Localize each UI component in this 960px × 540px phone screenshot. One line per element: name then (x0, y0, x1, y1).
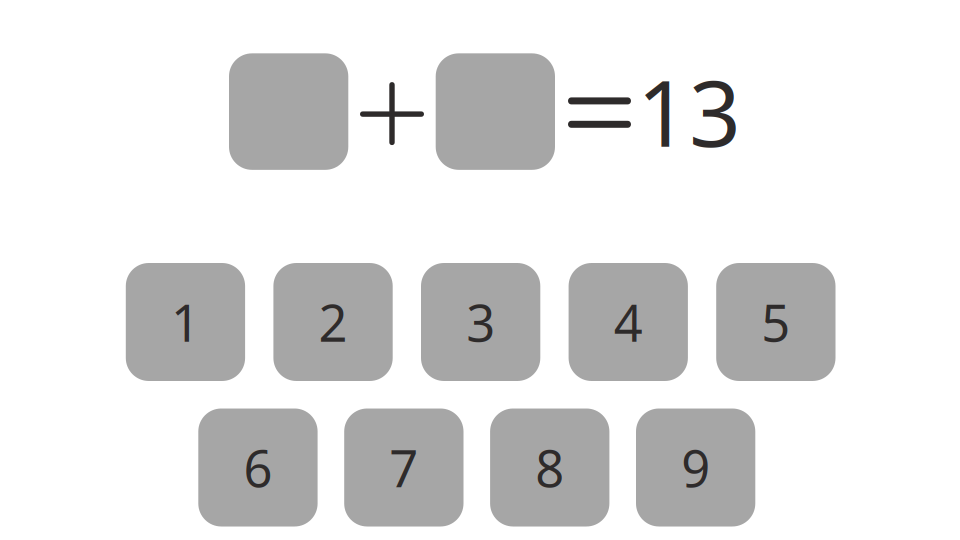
staticText: 6 (243, 434, 272, 501)
staticText: 2 (318, 288, 347, 356)
staticText: 9 (681, 434, 710, 501)
button[interactable]: 7 (344, 408, 463, 526)
button[interactable]: 3 (421, 263, 540, 381)
staticText: 7 (389, 434, 418, 501)
staticText: 13 (637, 51, 741, 172)
button[interactable]: 8 (490, 408, 609, 526)
button[interactable]: 2 (273, 263, 393, 381)
staticText: 4 (614, 288, 643, 356)
button[interactable]: Empty number slot (436, 53, 555, 170)
staticText: 8 (535, 434, 564, 501)
staticText: 5 (761, 288, 790, 356)
button[interactable]: 4 (569, 263, 688, 381)
button[interactable]: Empty number slot (229, 53, 348, 170)
button[interactable]: 5 (716, 263, 835, 381)
staticText: 3 (466, 288, 495, 356)
button[interactable]: 9 (636, 408, 755, 526)
button[interactable]: 1 (126, 263, 245, 381)
button[interactable]: 6 (198, 408, 318, 526)
staticText: 1 (171, 288, 200, 356)
